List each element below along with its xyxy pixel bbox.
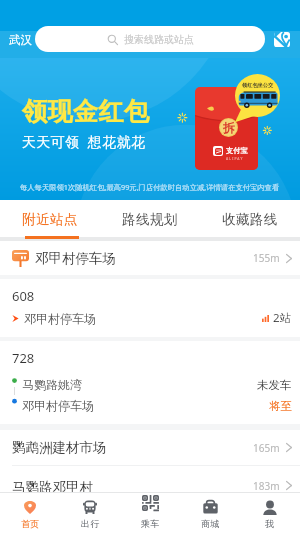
staticText: 鹦鹉洲建材市场: [12, 439, 253, 456]
button[interactable]: 邓甲村停车场: [0, 241, 300, 275]
staticText: 马鹦路姚湾: [22, 377, 257, 392]
staticText: ALIPAY: [226, 156, 244, 161]
staticText: 乘车: [141, 518, 160, 529]
button[interactable]: 608: [0, 279, 300, 337]
button[interactable]: 我: [240, 493, 300, 534]
staticText: 183m: [253, 479, 280, 492]
staticText: 天天可领 想花就花: [22, 132, 146, 151]
button[interactable]: 出行: [60, 493, 120, 534]
button[interactable]: 路线规划: [100, 200, 200, 237]
staticText: 领现金红包: [22, 96, 150, 127]
button[interactable]: 附近站点: [0, 200, 100, 237]
staticText: 未发车: [257, 378, 292, 392]
button[interactable]: 商城: [180, 493, 240, 534]
button[interactable]: 728: [0, 341, 300, 424]
staticText: 出行: [81, 518, 100, 529]
staticText: 邓甲村停车场: [35, 250, 253, 267]
staticText: 165m: [253, 441, 280, 455]
staticText: 领红包坐公交: [242, 82, 274, 89]
staticText: 155m: [253, 251, 280, 265]
staticText: 邓甲村停车场: [24, 311, 262, 326]
staticText: 首页: [21, 518, 40, 529]
staticText: 邓甲村停车场: [22, 398, 269, 413]
staticText: 马鹦路邓甲村: [12, 479, 253, 492]
staticText: 将至: [269, 399, 292, 413]
staticText: 收藏路线: [222, 211, 278, 228]
button[interactable]: 乘车: [120, 493, 180, 534]
button[interactable]: 收藏路线: [200, 200, 300, 237]
staticText: 支付宝: [226, 146, 248, 155]
staticText: 每人每天限领1次随机红包,最高99元,门店付款时自动立减,详情请在支付宝内查看: [20, 182, 280, 192]
staticText: 608: [12, 287, 35, 305]
staticText: 武汉: [9, 33, 32, 47]
staticText: 附近站点: [22, 211, 78, 228]
staticText: 搜索线路或站点: [124, 33, 194, 46]
button[interactable]: 领现金红包: [0, 58, 300, 200]
button[interactable]: 搜索线路或站点: [35, 26, 265, 52]
staticText: 728: [12, 349, 35, 367]
staticText: 拆: [223, 120, 235, 135]
staticText: 我: [265, 518, 275, 529]
staticText: 商城: [201, 518, 220, 529]
button[interactable]: 马鹦路邓甲村: [0, 466, 300, 492]
button[interactable]: 鹦鹉洲建材市场: [0, 430, 300, 465]
button[interactable]: 武汉: [9, 33, 32, 47]
button[interactable]: 地图: [269, 26, 295, 52]
staticText: 2站: [273, 310, 292, 326]
staticText: 路线规划: [122, 211, 178, 228]
button[interactable]: 首页: [0, 493, 60, 534]
